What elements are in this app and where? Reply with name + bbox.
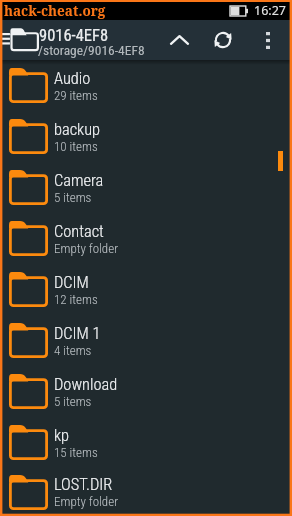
- button[interactable]: Refresh: [201, 20, 245, 60]
- staticText: Audio: [54, 69, 91, 88]
- staticText: DCIM 1: [54, 324, 101, 343]
- button[interactable]: Camera: [0, 162, 292, 213]
- staticText: 15 items: [54, 445, 98, 460]
- staticText: 5 items: [54, 394, 92, 409]
- button[interactable]: Open navigation drawer: [0, 20, 39, 60]
- staticText: 10 items: [54, 139, 98, 154]
- staticText: Empty folder: [54, 241, 119, 256]
- staticText: 16:27: [254, 2, 286, 19]
- button[interactable]: Audio: [0, 60, 292, 111]
- staticText: /storage/9016-4EF8: [38, 42, 145, 58]
- staticText: 9016-4EF8: [39, 26, 109, 45]
- button[interactable]: Contact: [0, 213, 292, 264]
- staticText: hack-cheat.org: [4, 2, 106, 20]
- staticText: kp: [54, 426, 70, 445]
- button[interactable]: DCIM: [0, 264, 292, 315]
- button[interactable]: DCIM 1: [0, 315, 292, 366]
- staticText: 4 items: [54, 343, 92, 358]
- button[interactable]: kp: [0, 417, 292, 468]
- staticText: 12 items: [54, 292, 98, 307]
- button[interactable]: backup: [0, 111, 292, 162]
- staticText: DCIM: [54, 273, 89, 292]
- staticText: Contact: [54, 222, 104, 241]
- staticText: Download: [54, 375, 118, 394]
- staticText: LOST.DIR: [54, 475, 113, 494]
- staticText: backup: [54, 120, 101, 139]
- button[interactable]: More options: [250, 20, 286, 60]
- staticText: 5 items: [54, 190, 92, 205]
- staticText: Camera: [54, 171, 104, 190]
- staticText: Empty folder: [54, 494, 119, 509]
- button[interactable]: Up: [157, 20, 201, 60]
- staticText: 29 items: [54, 88, 98, 103]
- button[interactable]: Download: [0, 366, 292, 417]
- button[interactable]: LOST.DIR: [0, 468, 292, 516]
